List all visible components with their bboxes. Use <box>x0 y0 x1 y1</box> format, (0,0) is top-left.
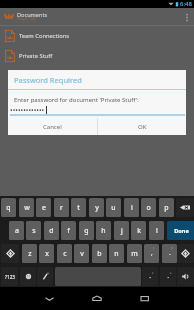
staticText: Done <box>174 227 189 235</box>
staticText: s <box>32 226 36 236</box>
button[interactable]: Comma <box>142 267 158 286</box>
button[interactable]: o <box>141 198 156 217</box>
staticText: w <box>24 203 30 213</box>
button[interactable]: OK <box>97 118 187 135</box>
button[interactable]: m <box>127 244 142 263</box>
staticText: Royal TSD <box>17 16 37 22</box>
button[interactable]: Done <box>167 221 194 240</box>
button[interactable]: s <box>26 221 41 240</box>
button[interactable]: Shift <box>1 244 19 263</box>
button[interactable]: Slash <box>37 267 53 286</box>
button[interactable]: b <box>92 244 107 263</box>
button[interactable]: f <box>61 221 76 240</box>
staticText: e <box>42 203 46 213</box>
staticText: n <box>114 249 119 259</box>
staticText: t <box>77 203 80 213</box>
button[interactable]: Back <box>32 287 66 310</box>
button[interactable]: Home <box>80 287 114 310</box>
staticText: Password Required <box>14 75 82 85</box>
staticText: p <box>164 203 169 213</box>
staticText: q <box>6 203 11 213</box>
button[interactable]: ! <box>144 244 159 263</box>
staticText: . <box>169 248 171 257</box>
button[interactable]: g <box>79 221 94 240</box>
button[interactable]: h <box>96 221 111 240</box>
button[interactable]: Cancel <box>8 118 97 135</box>
button[interactable]: x <box>39 244 54 263</box>
staticText: Team Connections <box>19 32 70 40</box>
button[interactable]: z <box>22 244 37 263</box>
staticText: b <box>97 249 102 259</box>
staticText: g <box>84 226 89 236</box>
button[interactable]: w <box>19 198 34 217</box>
staticText: v <box>80 249 84 259</box>
staticText: r <box>60 203 63 213</box>
button[interactable]: r <box>54 198 69 217</box>
button[interactable]: k <box>131 221 146 240</box>
staticText: OK <box>138 123 147 131</box>
button[interactable]: u <box>106 198 121 217</box>
button[interactable]: Team Connections <box>0 26 194 46</box>
staticText: ?123 <box>5 274 15 280</box>
staticText: Cancel <box>43 123 62 131</box>
button[interactable]: p <box>159 198 174 217</box>
staticText: ! <box>153 246 155 252</box>
button[interactable]: Shift <box>177 244 194 263</box>
button[interactable]: y <box>89 198 104 217</box>
button[interactable]: ?123 <box>1 267 18 286</box>
button[interactable]: More options <box>180 8 194 26</box>
button[interactable]: c <box>57 244 72 263</box>
button[interactable]: n <box>109 244 124 263</box>
button[interactable]: a <box>9 221 24 240</box>
button[interactable]: Private Stuff <box>0 46 194 66</box>
button[interactable]: t <box>71 198 86 217</box>
button[interactable]: q <box>1 198 16 217</box>
staticText: f <box>67 226 70 236</box>
staticText: Documents <box>17 11 48 19</box>
staticText: d <box>49 226 54 236</box>
staticText: ? <box>171 246 173 252</box>
button[interactable]: Voice input <box>177 267 194 286</box>
staticText: y <box>95 203 99 213</box>
staticText: k <box>137 226 141 236</box>
staticText: a <box>15 226 19 236</box>
button[interactable]: Emoji <box>20 267 36 286</box>
staticText: j <box>121 226 123 236</box>
staticText: i <box>131 203 133 213</box>
staticText: ••••••••••••• <box>10 106 45 116</box>
button[interactable]: v <box>74 244 89 263</box>
staticText: Private Stuff <box>19 52 53 60</box>
staticText: u <box>111 203 116 213</box>
staticText: o <box>146 203 151 213</box>
button[interactable]: j <box>114 221 129 240</box>
staticText: x <box>45 249 49 259</box>
staticText: , <box>151 248 153 257</box>
button[interactable]: ? <box>162 244 177 263</box>
staticText: c <box>63 249 67 259</box>
staticText: z <box>28 249 32 259</box>
button[interactable]: Backspace <box>176 198 194 217</box>
button[interactable]: e <box>36 198 51 217</box>
staticText: h <box>101 226 106 236</box>
staticText: m <box>131 249 138 259</box>
button[interactable]: d <box>44 221 59 240</box>
staticText: Enter password for document 'Private Stu… <box>14 96 139 104</box>
button[interactable]: l <box>149 221 164 240</box>
staticText: 6:48 <box>180 0 192 8</box>
button[interactable]: Period <box>160 267 176 286</box>
button[interactable]: i <box>124 198 139 217</box>
button[interactable]: Recent apps <box>128 287 162 310</box>
staticText: l <box>156 226 158 236</box>
